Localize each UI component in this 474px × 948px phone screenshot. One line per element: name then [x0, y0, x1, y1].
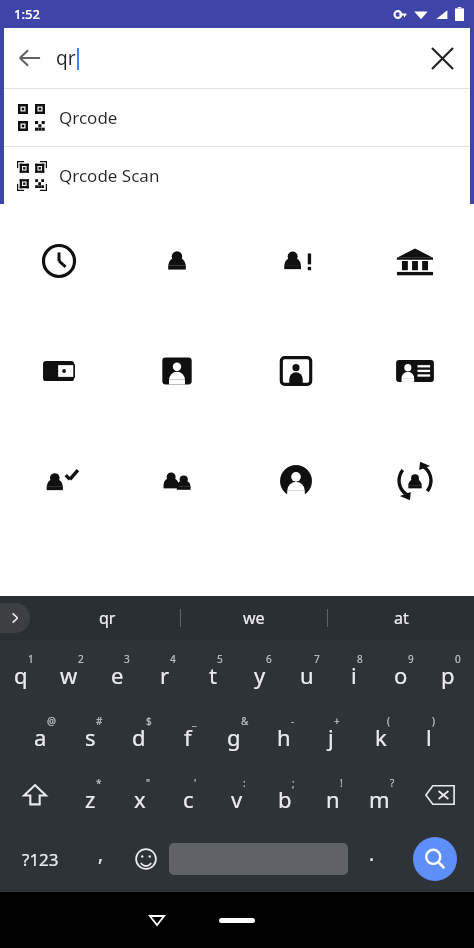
staticText: o	[394, 660, 408, 690]
button[interactable]: p	[427, 640, 474, 702]
button[interactable]: Home	[219, 918, 255, 923]
staticText: e	[111, 660, 124, 690]
staticText: v	[231, 784, 243, 814]
button[interactable]: we	[181, 596, 327, 640]
staticText: !	[340, 776, 343, 790]
button[interactable]: z	[69, 764, 118, 826]
button[interactable]: ACCOUNT	[236, 452, 355, 510]
staticText: 6	[266, 652, 272, 666]
button[interactable]: k	[358, 702, 406, 764]
button[interactable]: s	[69, 702, 118, 764]
staticText: x	[134, 784, 146, 814]
button[interactable]: l	[406, 702, 454, 764]
button[interactable]: j	[310, 702, 358, 764]
button[interactable]: .	[348, 826, 395, 892]
staticText: ?123	[22, 848, 59, 871]
button[interactable]: Qrcode	[4, 89, 470, 146]
staticText: (	[387, 714, 390, 728]
button[interactable]: BANK	[355, 232, 474, 290]
staticText: .	[369, 841, 375, 867]
button[interactable]: Shift	[0, 764, 69, 826]
button[interactable]: e	[96, 640, 144, 702]
staticText: a	[34, 722, 47, 752]
button[interactable]: PERSON	[118, 232, 236, 290]
button[interactable]: PERSON_ALERT	[236, 232, 355, 290]
button[interactable]: PERSON_CHECK	[0, 452, 118, 510]
button[interactable]: Back	[4, 28, 470, 88]
staticText: ?	[390, 776, 395, 790]
button[interactable]: n	[310, 764, 358, 826]
staticText: 4	[170, 652, 176, 666]
button[interactable]: Qrcode Scan	[4, 147, 470, 204]
staticText: g	[227, 722, 241, 752]
staticText: 2	[78, 652, 84, 666]
button[interactable]: y	[239, 640, 286, 702]
button[interactable]: u	[286, 640, 333, 702]
staticText: 3	[124, 652, 130, 666]
staticText: z	[85, 784, 96, 814]
staticText: b	[278, 784, 292, 814]
button[interactable]: CLOCK	[0, 232, 118, 290]
button[interactable]: GROUP	[118, 452, 236, 510]
button[interactable]: Search	[413, 837, 457, 881]
button[interactable]: m	[358, 764, 406, 826]
button[interactable]: Back	[4, 32, 56, 84]
staticText: f	[184, 722, 192, 752]
staticText: @	[47, 714, 56, 728]
staticText: i	[351, 660, 357, 690]
button[interactable]: PERSON_SQ_FILL	[118, 342, 236, 400]
staticText: s	[85, 722, 96, 752]
staticText: m	[369, 784, 390, 814]
staticText: #	[96, 714, 103, 728]
staticText: n	[326, 784, 340, 814]
staticText: &	[241, 714, 249, 728]
button[interactable]: b	[262, 764, 310, 826]
button[interactable]: r	[144, 640, 192, 702]
staticText: k	[375, 722, 387, 752]
staticText: q	[14, 660, 28, 690]
staticText: we	[243, 607, 265, 629]
button[interactable]: g	[214, 702, 262, 764]
staticText: ,	[98, 841, 104, 867]
button[interactable]: x	[118, 764, 166, 826]
button[interactable]: Clear	[414, 30, 470, 86]
staticText: +	[334, 714, 340, 728]
staticText: c	[183, 784, 194, 814]
staticText: r	[160, 660, 170, 690]
button[interactable]: ?123	[0, 826, 80, 892]
button[interactable]: ,	[80, 826, 122, 892]
staticText: at	[394, 607, 409, 629]
staticText: p	[441, 660, 455, 690]
staticText: w	[60, 660, 78, 690]
button[interactable]: CARD	[355, 342, 474, 400]
button[interactable]: qr	[34, 596, 180, 640]
staticText: 1	[28, 652, 34, 666]
button[interactable]: w	[48, 640, 96, 702]
button[interactable]: SYNC	[355, 452, 474, 510]
button[interactable]: at	[328, 596, 474, 640]
button[interactable]: Expand suggestions	[0, 603, 30, 633]
staticText: u	[300, 660, 314, 690]
button[interactable]: Hide keyboard	[137, 900, 177, 940]
button[interactable]: t	[192, 640, 239, 702]
staticText: 1:52	[14, 5, 40, 23]
button[interactable]: o	[380, 640, 427, 702]
button[interactable]: i	[333, 640, 380, 702]
staticText: "	[146, 776, 151, 790]
button[interactable]: Backspace	[406, 764, 474, 826]
button[interactable]: a	[20, 702, 69, 764]
staticText: _	[192, 714, 197, 728]
button[interactable]: Emoji	[122, 826, 169, 892]
staticText: 0	[455, 652, 461, 666]
button[interactable]: q	[0, 640, 48, 702]
button[interactable]: v	[214, 764, 262, 826]
button[interactable]: PERSON_SQ_OUT	[236, 342, 355, 400]
button[interactable]: WALLET	[0, 342, 118, 400]
staticText: j	[328, 722, 334, 752]
button[interactable]: d	[118, 702, 166, 764]
button[interactable]: h	[262, 702, 310, 764]
button[interactable]: c	[166, 764, 214, 826]
staticText: l	[426, 722, 432, 752]
button[interactable]: f	[166, 702, 214, 764]
